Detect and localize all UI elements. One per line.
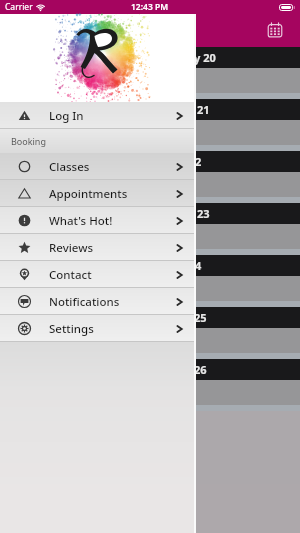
staticText: 2: [195, 154, 202, 169]
staticText: 26: [194, 362, 207, 377]
button[interactable]: Notifications: [0, 288, 196, 315]
staticText: Booking: [11, 135, 46, 147]
staticText: Contact: [49, 267, 92, 283]
staticText: 21: [197, 102, 210, 117]
staticText: Carrier: [5, 1, 33, 13]
button[interactable]: 25: [0, 307, 300, 328]
button[interactable]: Calendar: [262, 18, 287, 43]
staticText: Settings: [49, 321, 94, 337]
button[interactable]: What's Hot!: [0, 207, 196, 234]
button[interactable]: Appointments: [0, 180, 196, 207]
button[interactable]: Reviews: [0, 234, 196, 261]
staticText: y 20: [194, 50, 216, 65]
button[interactable]: Log In: [0, 102, 196, 129]
staticText: 25: [194, 310, 207, 325]
staticText: Appointments: [49, 186, 128, 202]
staticText: 4: [195, 258, 202, 273]
staticText: Classes: [49, 159, 90, 175]
button[interactable]: y 20: [0, 47, 300, 68]
staticText: Notifications: [49, 294, 120, 310]
staticText: Log In: [49, 108, 84, 124]
button[interactable]: 4: [0, 255, 300, 276]
staticText: What's Hot!: [49, 213, 113, 229]
button[interactable]: Classes: [0, 153, 196, 180]
button[interactable]: 23: [0, 203, 300, 224]
button[interactable]: 2: [0, 151, 300, 172]
button[interactable]: 26: [0, 359, 300, 380]
button[interactable]: 21: [0, 99, 300, 120]
button[interactable]: Contact: [0, 261, 196, 288]
staticText: Reviews: [49, 240, 94, 256]
staticText: 23: [197, 206, 210, 221]
staticText: 12:43 PM: [131, 1, 169, 13]
button[interactable]: Settings: [0, 315, 196, 342]
